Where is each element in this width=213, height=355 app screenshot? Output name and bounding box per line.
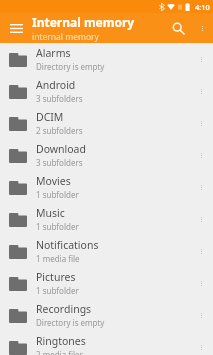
staticText: Ringtones bbox=[36, 334, 86, 348]
button[interactable]: Open navigation drawer bbox=[4, 16, 28, 40]
staticText: 2 subfolders bbox=[36, 125, 83, 136]
button[interactable]: Download bbox=[0, 139, 213, 171]
button[interactable]: Music bbox=[0, 203, 213, 235]
staticText: Music bbox=[36, 206, 65, 220]
staticText: 1 media file bbox=[36, 253, 80, 264]
staticText: 3 subfolders bbox=[36, 93, 83, 104]
staticText: Download bbox=[36, 142, 86, 156]
staticText: Directory is empty bbox=[36, 61, 105, 72]
button[interactable]: Alarms bbox=[0, 43, 213, 75]
button[interactable]: More options bbox=[191, 17, 213, 39]
staticText: Directory is empty bbox=[36, 317, 105, 328]
staticText: Internal memory bbox=[32, 14, 135, 30]
button[interactable]: Recordings bbox=[0, 299, 213, 331]
button[interactable]: Notifications bbox=[0, 235, 213, 267]
staticText: 3 subfolders bbox=[36, 157, 83, 168]
button[interactable]: More options for Ringtones bbox=[191, 332, 211, 355]
staticText: Pictures bbox=[36, 270, 76, 284]
staticText: Recordings bbox=[36, 302, 92, 316]
button[interactable]: DCIM bbox=[0, 107, 213, 139]
staticText: 1 subfolder bbox=[36, 221, 79, 232]
staticText: 1 subfolder bbox=[36, 189, 79, 200]
staticText: DCIM bbox=[36, 110, 64, 124]
staticText: Android bbox=[36, 78, 76, 92]
staticText: internal memory bbox=[32, 31, 99, 43]
button[interactable]: Pictures bbox=[0, 267, 213, 299]
button[interactable]: Android bbox=[0, 75, 213, 107]
staticText: Movies bbox=[36, 174, 71, 188]
staticText: 1 subfolder bbox=[36, 285, 79, 296]
button[interactable]: Movies bbox=[0, 171, 213, 203]
button[interactable]: Search bbox=[165, 15, 191, 41]
staticText: 2 media files bbox=[36, 349, 84, 355]
staticText: 4:10 bbox=[195, 2, 210, 12]
staticText: Alarms bbox=[36, 46, 71, 60]
button[interactable]: Ringtones bbox=[0, 331, 213, 355]
staticText: Notifications bbox=[36, 238, 99, 252]
